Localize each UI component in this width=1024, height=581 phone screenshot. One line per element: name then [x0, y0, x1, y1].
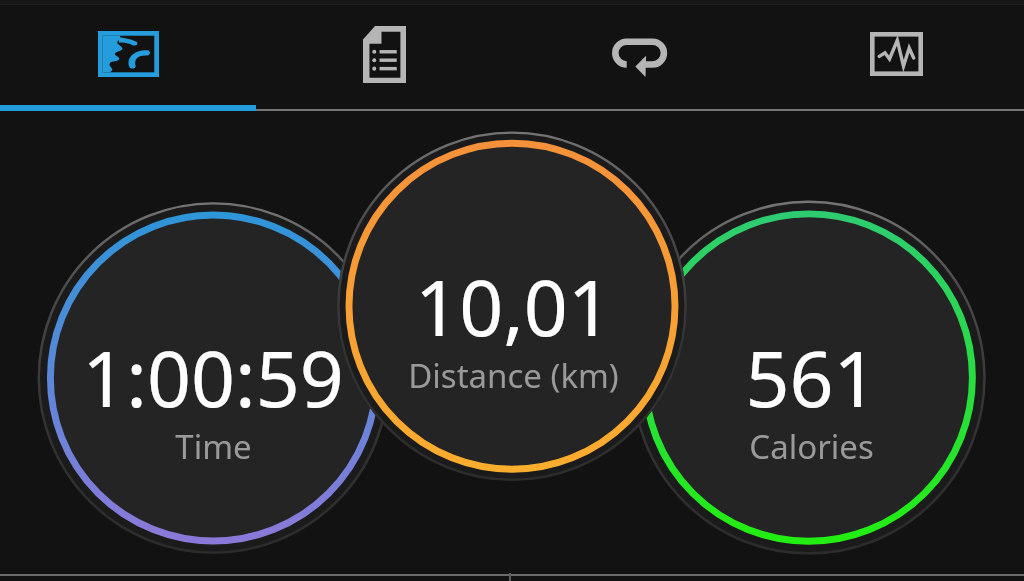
staticText: 561: [745, 325, 878, 425]
button[interactable]: Chart: [768, 0, 1024, 108]
staticText: Time: [175, 424, 252, 464]
staticText: Calories: [749, 424, 874, 464]
button[interactable]: Details: [256, 0, 512, 108]
button[interactable]: Map: [0, 0, 256, 108]
staticText: 1:00:59: [82, 325, 344, 425]
button[interactable]: Laps: [512, 0, 768, 108]
staticText: 10,01: [415, 254, 612, 354]
staticText: Distance (km): [408, 353, 619, 393]
